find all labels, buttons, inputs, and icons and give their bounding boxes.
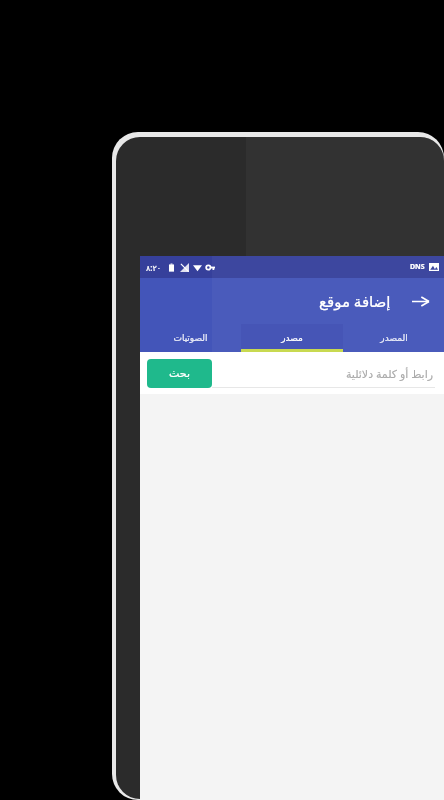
button[interactable]: رابط أو كلمة دلائلية	[212, 352, 435, 394]
staticText: DNS	[410, 262, 425, 272]
button[interactable]: المصدر	[343, 324, 444, 352]
staticText: إضافة موقع	[319, 291, 391, 311]
staticText: ٨:٢٠	[146, 262, 162, 273]
button[interactable]: Back	[405, 286, 435, 316]
staticText: رابط أو كلمة دلائلية	[345, 366, 433, 381]
button[interactable]: بحث	[147, 359, 212, 388]
staticText: الصوتيات	[173, 333, 208, 343]
staticText: مصدر	[281, 333, 303, 343]
button[interactable]: مصدر	[241, 324, 343, 352]
staticText: بحث	[169, 367, 190, 380]
button[interactable]: الصوتيات	[140, 324, 241, 352]
staticText: المصدر	[380, 333, 408, 343]
